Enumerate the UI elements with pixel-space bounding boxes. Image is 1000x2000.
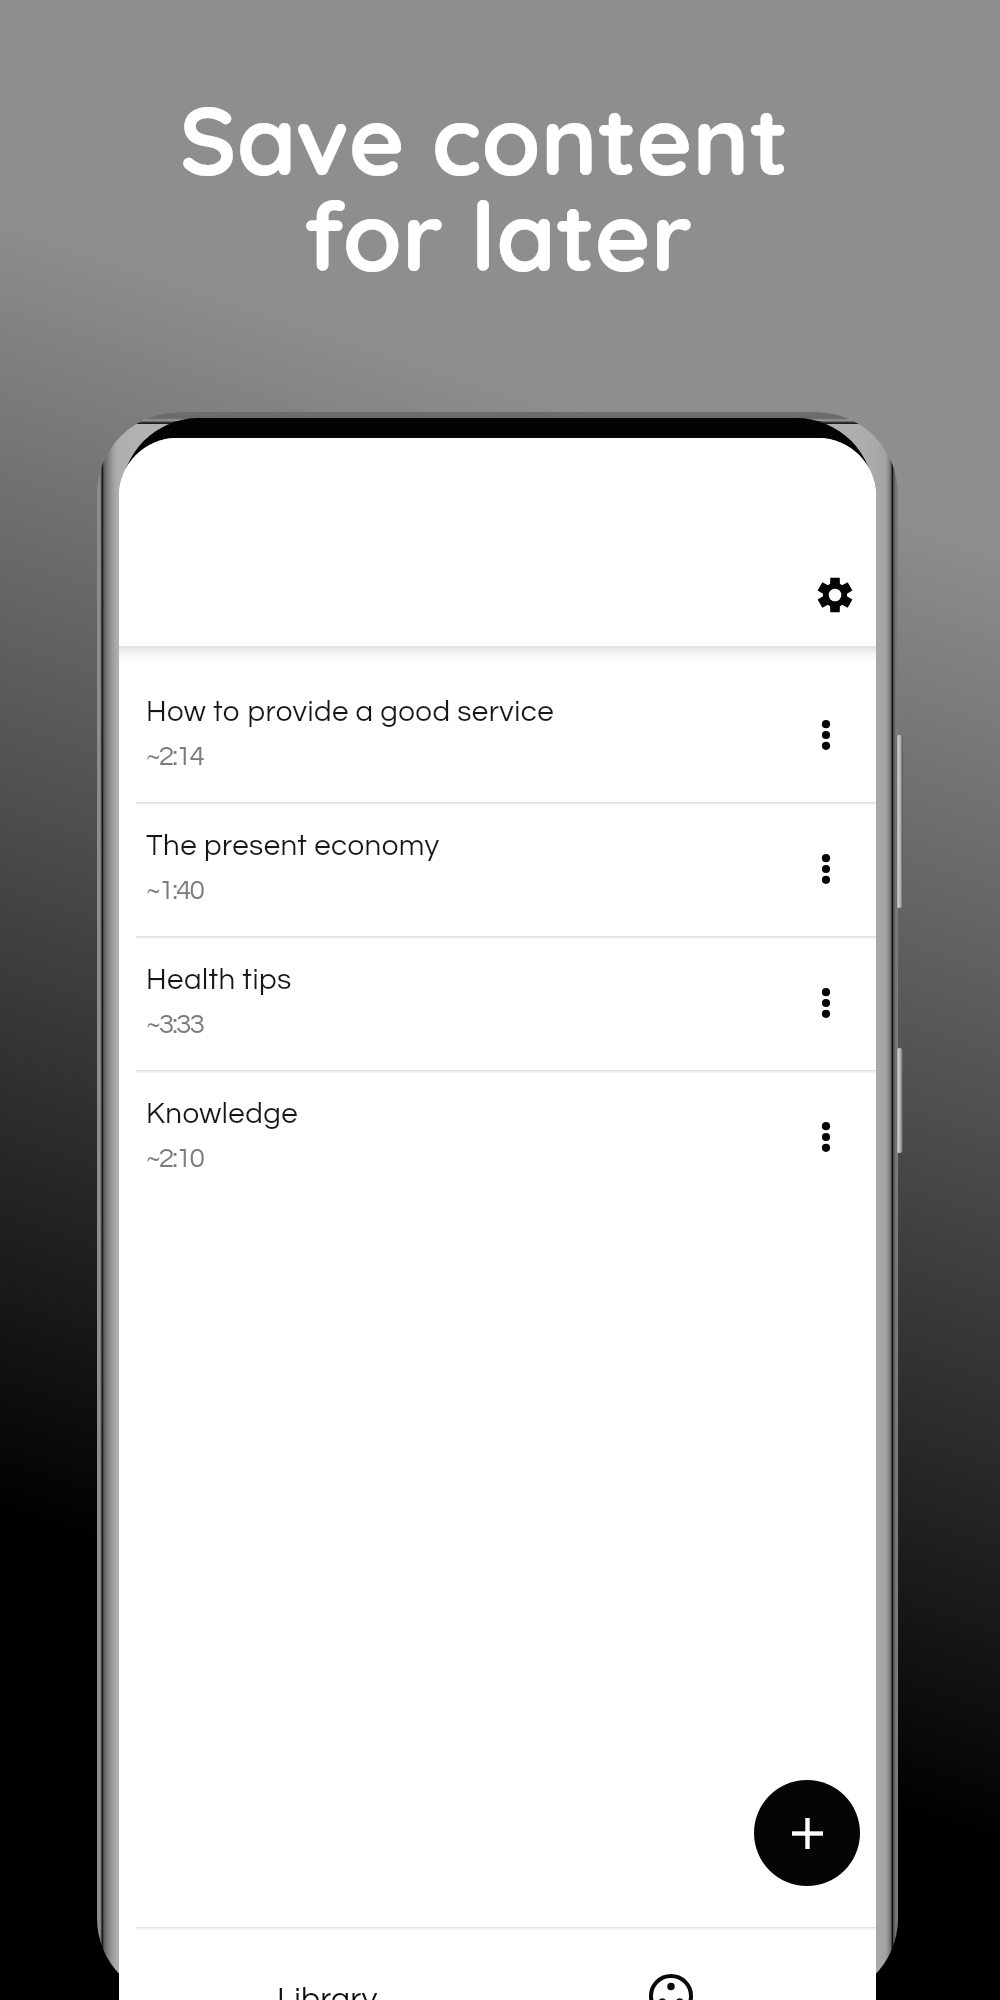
button[interactable]: Explore [613,1965,728,2000]
staticText: Knowledge [146,1099,299,1129]
staticText: ~2:14 [146,742,204,771]
button[interactable]: Health tips [119,936,876,1070]
staticText: ~2:10 [146,1144,204,1173]
button[interactable]: More options [791,1102,861,1172]
button[interactable]: The present economy [119,802,876,936]
button[interactable]: Add new item [754,1780,860,1886]
button[interactable]: Library [252,1969,402,2000]
staticText: Library [277,1983,378,2000]
staticText: for later [0,175,998,294]
button[interactable]: Settings [797,557,873,633]
staticText: Health tips [146,965,292,995]
staticText: How to provide a good service [146,697,555,727]
button[interactable]: Knowledge [119,1070,876,1204]
staticText: ~3:33 [146,1010,204,1039]
staticText: ~1:40 [146,876,204,905]
button[interactable]: How to provide a good service [119,668,876,802]
button[interactable]: More options [791,968,861,1038]
staticText: The present economy [146,831,440,861]
staticText: Save content [0,79,984,198]
button[interactable]: More options [791,700,861,770]
button[interactable]: More options [791,834,861,904]
